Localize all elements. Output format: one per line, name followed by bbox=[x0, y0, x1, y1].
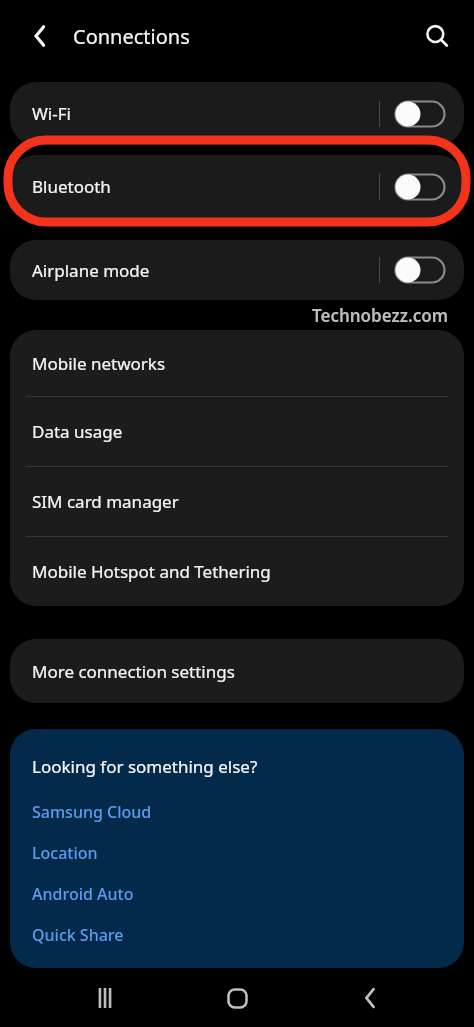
button[interactable]: Android Auto bbox=[10, 873, 464, 914]
button[interactable]: Quick Share bbox=[10, 914, 464, 955]
staticText: Android Auto bbox=[32, 883, 134, 905]
other: Bluetooth toggle bbox=[394, 173, 446, 201]
other: Wi-Fi toggle bbox=[394, 100, 446, 128]
staticText: Connections bbox=[73, 23, 190, 50]
staticText: Bluetooth bbox=[32, 175, 111, 198]
button[interactable]: Back bbox=[342, 970, 398, 1026]
staticText: Looking for something else? bbox=[32, 755, 258, 778]
button[interactable]: Samsung Cloud bbox=[10, 791, 464, 832]
staticText: Quick Share bbox=[32, 924, 124, 946]
staticText: Data usage bbox=[32, 420, 123, 443]
staticText: Mobile Hotspot and Tethering bbox=[32, 560, 271, 583]
staticText: Wi-Fi bbox=[32, 102, 71, 125]
button[interactable]: Mobile Hotspot and Tethering bbox=[10, 537, 464, 606]
staticText: Technobezz.com bbox=[311, 304, 448, 327]
button[interactable]: Bluetooth bbox=[10, 155, 464, 218]
button[interactable]: Location bbox=[10, 832, 464, 873]
staticText: Samsung Cloud bbox=[32, 801, 152, 823]
button[interactable]: Airplane mode bbox=[10, 240, 464, 300]
button[interactable]: SIM card manager bbox=[10, 467, 464, 536]
button[interactable]: Mobile networks bbox=[10, 330, 464, 396]
button[interactable]: Home bbox=[209, 970, 265, 1026]
staticText: SIM card manager bbox=[32, 490, 179, 513]
button[interactable]: Wi-Fi bbox=[10, 82, 464, 145]
staticText: Location bbox=[32, 842, 98, 864]
staticText: Airplane mode bbox=[32, 259, 150, 282]
button[interactable]: Data usage bbox=[10, 397, 464, 466]
other: Airplane mode toggle bbox=[394, 256, 446, 284]
button[interactable]: More connection settings bbox=[10, 639, 464, 703]
button[interactable]: Search bbox=[414, 13, 460, 59]
staticText: More connection settings bbox=[32, 660, 235, 683]
button[interactable]: Back bbox=[18, 13, 64, 59]
staticText: Mobile networks bbox=[32, 352, 166, 375]
button[interactable]: Recent apps bbox=[77, 970, 133, 1026]
